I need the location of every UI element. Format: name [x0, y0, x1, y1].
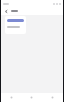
button[interactable]: Back — [3, 8, 9, 14]
button[interactable]: Profile — [42, 93, 63, 102]
button[interactable]: Search — [21, 93, 42, 102]
button[interactable]: Home — [1, 93, 21, 102]
button[interactable] — [5, 16, 26, 34]
